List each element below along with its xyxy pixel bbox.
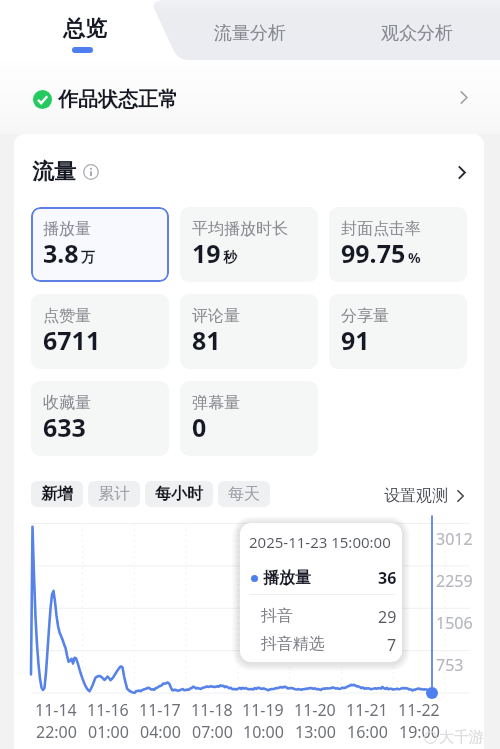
staticText: 设置观测 <box>384 486 448 506</box>
button[interactable]: 设置观测 <box>384 484 468 504</box>
button[interactable]: 播放量 <box>31 207 169 282</box>
staticText: 633 <box>43 410 86 444</box>
staticText: 36 <box>378 567 397 589</box>
staticText: 万 <box>81 249 95 267</box>
staticText: 11-14 <box>35 699 77 721</box>
staticText: 大千游 <box>439 728 484 747</box>
button[interactable]: 平均播放时长 <box>180 207 318 282</box>
button[interactable]: 评论量 <box>180 294 318 369</box>
button[interactable]: 每天 <box>218 481 270 507</box>
staticText: 累计 <box>98 484 130 504</box>
button[interactable]: 分享量 <box>329 294 467 369</box>
button[interactable]: 累计 <box>88 481 140 507</box>
button[interactable]: 流量分析 <box>166 0 333 60</box>
button[interactable]: 总览 <box>0 0 166 60</box>
staticText: 每小时 <box>155 484 203 504</box>
staticText: 16:00 <box>347 721 388 743</box>
staticText: 每天 <box>228 484 260 504</box>
staticText: 点赞量 <box>43 306 91 326</box>
staticText: 流量分析 <box>214 22 286 45</box>
button[interactable]: 收藏量 <box>31 381 169 456</box>
staticText: 11-21 <box>346 699 388 721</box>
staticText: 99.75 <box>341 236 406 270</box>
staticText: 抖音 <box>261 606 293 626</box>
staticText: 3012 <box>436 528 473 550</box>
button[interactable]: 流量 <box>14 158 484 186</box>
staticText: 6711 <box>43 323 101 357</box>
button[interactable]: 观众分析 <box>333 0 500 60</box>
staticText: 评论量 <box>192 306 240 326</box>
staticText: 弹幕量 <box>192 393 240 413</box>
staticText: 81 <box>192 323 221 357</box>
staticText: 11-18 <box>191 699 233 721</box>
staticText: 11-22 <box>398 699 440 721</box>
button[interactable]: 弹幕量 <box>180 381 318 456</box>
staticText: 平均播放时长 <box>192 219 288 239</box>
staticText: 收藏量 <box>43 393 91 413</box>
staticText: 流量 <box>32 158 76 186</box>
staticText: 秒 <box>223 249 237 267</box>
staticText: 2025-11-23 15:00:00 <box>249 532 391 552</box>
button[interactable]: 每小时 <box>145 481 213 507</box>
staticText: 11-20 <box>294 699 336 721</box>
button[interactable]: 新增 <box>31 481 83 507</box>
staticText: 2259 <box>436 570 473 592</box>
staticText: 总览 <box>63 15 107 43</box>
staticText: 01:00 <box>88 721 129 743</box>
staticText: 22:00 <box>36 721 77 743</box>
staticText: 07:00 <box>192 721 233 743</box>
staticText: 19 <box>192 236 221 270</box>
staticText: 7 <box>387 634 397 656</box>
button[interactable]: 作品状态正常 <box>0 60 500 134</box>
staticText: 1506 <box>436 612 473 634</box>
staticText: 播放量 <box>263 568 311 588</box>
staticText: 观众分析 <box>381 22 453 45</box>
staticText: 作品状态正常 <box>58 87 178 112</box>
staticText: 04:00 <box>140 721 181 743</box>
staticText: 11-17 <box>139 699 181 721</box>
staticText: 3.8 <box>43 236 79 270</box>
staticText: 0 <box>192 410 207 444</box>
staticText: 19:00 <box>399 721 440 743</box>
staticText: 91 <box>341 323 370 357</box>
staticText: 753 <box>436 654 464 676</box>
staticText: 11-16 <box>87 699 129 721</box>
button[interactable]: 点赞量 <box>31 294 169 369</box>
staticText: 11-19 <box>242 699 284 721</box>
staticText: 分享量 <box>341 306 389 326</box>
staticText: 29 <box>378 606 397 628</box>
staticText: 13:00 <box>295 721 336 743</box>
staticText: 抖音精选 <box>261 634 325 654</box>
staticText: 10:00 <box>243 721 284 743</box>
staticText: 播放量 <box>43 219 91 239</box>
staticText: 新增 <box>41 484 73 504</box>
button[interactable]: 封面点击率 <box>329 207 467 282</box>
staticText: % <box>408 248 421 267</box>
staticText: 封面点击率 <box>341 219 421 239</box>
